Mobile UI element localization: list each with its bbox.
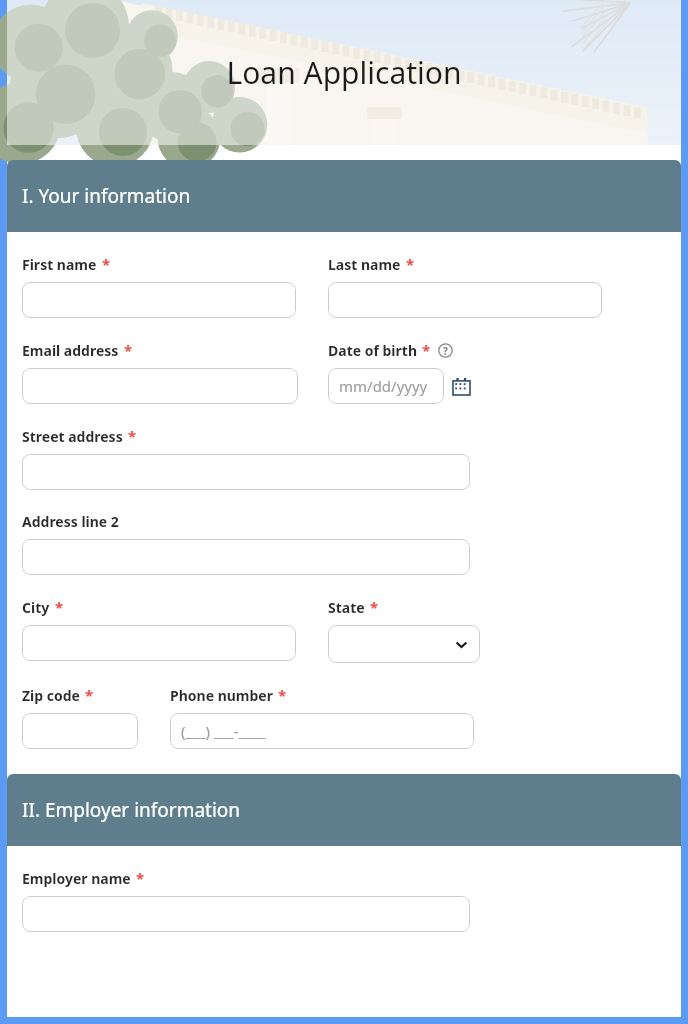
staticText: * bbox=[102, 254, 111, 274]
staticText: * bbox=[370, 597, 379, 617]
staticText: * bbox=[128, 426, 137, 446]
staticText: Phone number bbox=[170, 686, 273, 705]
staticText: City bbox=[22, 598, 50, 617]
staticText: * bbox=[124, 340, 133, 360]
button[interactable]: Select state bbox=[328, 625, 480, 663]
staticText: State bbox=[328, 598, 365, 617]
staticText: (___) ___-____ bbox=[181, 721, 266, 741]
button[interactable] bbox=[22, 368, 298, 404]
button[interactable] bbox=[22, 713, 138, 749]
staticText: * bbox=[55, 597, 64, 617]
staticText: II. Employer information bbox=[22, 797, 241, 823]
staticText: * bbox=[422, 340, 431, 360]
staticText: Date of birth bbox=[328, 341, 417, 360]
staticText: Zip code bbox=[22, 686, 80, 705]
staticText: Employer name bbox=[22, 869, 131, 888]
staticText: Address line 2 bbox=[22, 512, 119, 531]
button[interactable] bbox=[22, 625, 296, 661]
button[interactable] bbox=[22, 454, 470, 490]
staticText: Loan Application bbox=[7, 52, 681, 93]
button[interactable] bbox=[22, 896, 470, 932]
button[interactable]: mm/dd/yyyy bbox=[328, 368, 444, 404]
staticText: Email address bbox=[22, 341, 119, 360]
button[interactable]: II. Employer information bbox=[7, 774, 681, 846]
button[interactable] bbox=[22, 282, 296, 318]
staticText: Last name bbox=[328, 255, 401, 274]
staticText: * bbox=[85, 685, 94, 705]
button[interactable] bbox=[22, 539, 470, 575]
staticText: * bbox=[136, 868, 145, 888]
button[interactable]: (___) ___-____ bbox=[170, 713, 474, 749]
staticText: * bbox=[278, 685, 287, 705]
button[interactable]: Help about date of birth bbox=[438, 343, 453, 358]
staticText: I. Your information bbox=[22, 183, 191, 209]
button[interactable] bbox=[328, 282, 602, 318]
staticText: Street address bbox=[22, 427, 123, 446]
staticText: mm/dd/yyyy bbox=[339, 376, 428, 396]
staticText: ? bbox=[443, 344, 448, 358]
staticText: First name bbox=[22, 255, 97, 274]
button[interactable]: I. Your information bbox=[7, 160, 681, 232]
button[interactable]: Open date picker bbox=[453, 378, 470, 395]
staticText: * bbox=[406, 254, 415, 274]
